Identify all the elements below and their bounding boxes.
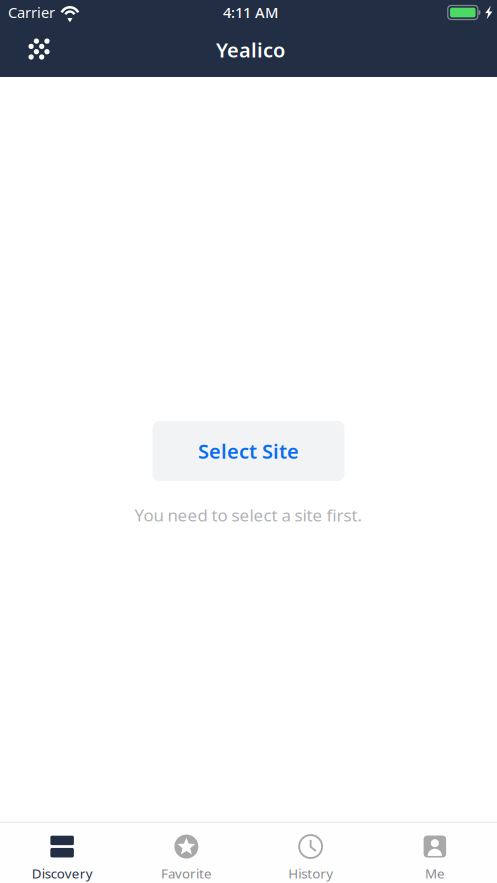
staticText: Carrier <box>8 2 55 22</box>
button[interactable]: Discovery <box>0 822 124 883</box>
staticText: History <box>288 864 333 882</box>
staticText: Favorite <box>161 864 212 882</box>
staticText: You need to select a site first. <box>134 503 362 526</box>
staticText: Yealico <box>216 36 285 63</box>
button[interactable]: Favorite <box>124 822 248 883</box>
button[interactable]: Sites <box>0 0 66 77</box>
button[interactable]: History <box>248 822 373 883</box>
staticText: Select Site <box>198 438 299 464</box>
staticText: 4:11 AM <box>223 2 278 22</box>
button[interactable]: Me <box>373 822 497 883</box>
button[interactable]: Select Site <box>152 421 344 481</box>
staticText: Me <box>425 864 445 882</box>
staticText: Discovery <box>32 864 93 882</box>
